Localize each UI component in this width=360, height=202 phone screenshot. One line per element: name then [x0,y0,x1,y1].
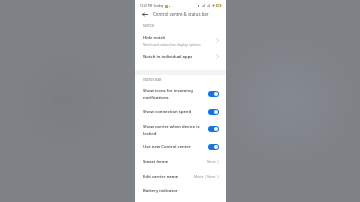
staticText: STATUS BAR [143,78,162,82]
staticText: Maxis | None [194,174,216,179]
staticText: Notch in individual apps [143,54,193,60]
staticText: Hide notch [143,35,166,41]
staticText: Show carrier when device is [143,124,200,130]
staticText: Smart home [143,159,169,165]
staticText: Edit carrier name [143,174,179,180]
staticText: 12:41 PM Sunday [140,4,164,8]
staticText: Notch and status bar display options [143,42,201,47]
button[interactable]: Back [139,8,151,20]
staticText: Use new Control centre [143,144,191,150]
staticText: locked [143,131,157,137]
staticText: NOTCH [143,24,155,28]
staticText: notifications [143,95,169,101]
staticText: Show icons for incoming [143,88,193,94]
button[interactable]: Hide notch [135,32,226,49]
staticText: Control centre & status bar [153,11,209,17]
staticText: None [207,159,216,164]
staticText: Battery indicator [143,188,178,194]
staticText: Show connection speed [143,109,192,115]
